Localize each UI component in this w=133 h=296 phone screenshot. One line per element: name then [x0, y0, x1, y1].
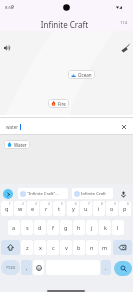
button[interactable]: f — [47, 220, 59, 235]
button[interactable]: Search — [114, 261, 132, 276]
staticText: u — [84, 205, 88, 212]
staticText: z — [26, 244, 29, 251]
button[interactable]: Clear board — [118, 41, 132, 55]
button[interactable]: , — [21, 260, 32, 275]
button[interactable]: e — [27, 201, 39, 216]
button[interactable]: n — [86, 240, 98, 255]
staticText: a — [12, 224, 16, 231]
button[interactable]: g — [60, 220, 72, 235]
button[interactable]: Emoji — [33, 260, 44, 275]
staticText: n — [90, 244, 94, 251]
staticText: Water — [14, 142, 27, 148]
button[interactable]: r — [40, 201, 52, 216]
staticText: 5 — [61, 202, 63, 206]
staticText: v — [65, 244, 68, 251]
staticText: l — [117, 224, 119, 231]
staticText: b — [77, 244, 81, 251]
button[interactable]: "Infinite Craft"... — [18, 188, 68, 199]
staticText: d — [38, 224, 42, 231]
staticText: Fire — [58, 101, 66, 107]
button[interactable]: j — [86, 220, 98, 235]
staticText: r — [45, 205, 48, 212]
staticText: x — [39, 244, 42, 251]
staticText: 0 — [127, 202, 129, 206]
staticText: e — [31, 205, 35, 212]
button[interactable]: Backspace — [113, 240, 132, 255]
button[interactable]: h — [73, 220, 85, 235]
button[interactable]: c — [47, 240, 59, 255]
button[interactable]: Google search — [3, 189, 13, 199]
button[interactable]: z — [21, 240, 33, 255]
staticText: "Infinite Craft"... — [27, 191, 59, 197]
button[interactable]: Toggle sound — [0, 41, 14, 55]
staticText: w — [18, 205, 23, 212]
button[interactable]: Water — [4, 140, 30, 149]
staticText: 114 — [120, 20, 128, 26]
button[interactable]: ?123 — [1, 260, 20, 275]
staticText: k — [104, 224, 107, 231]
button[interactable]: v — [60, 240, 72, 255]
staticText: 4 — [48, 202, 50, 206]
button[interactable]: Clear text — [118, 121, 130, 133]
staticText: 8:54 — [5, 4, 14, 10]
staticText: ?123 — [6, 265, 16, 271]
staticText: g — [64, 224, 68, 231]
button[interactable]: . — [101, 260, 111, 275]
button[interactable]: y — [67, 201, 79, 216]
staticText: p — [123, 205, 127, 212]
staticText: 6 — [75, 202, 77, 206]
staticText: 1 — [9, 202, 11, 206]
button[interactable]: Voice input — [117, 188, 129, 200]
button[interactable]: Fire — [48, 99, 69, 108]
button[interactable]: p — [119, 201, 131, 216]
button[interactable]: i — [93, 201, 105, 216]
staticText: 8 — [101, 202, 103, 206]
staticText: o — [110, 205, 114, 212]
button[interactable]: s — [21, 220, 33, 235]
button[interactable]: w — [14, 201, 26, 216]
button[interactable]: l — [112, 220, 124, 235]
button[interactable]: m — [99, 240, 111, 255]
staticText: t — [58, 205, 60, 212]
button[interactable]: b — [73, 240, 85, 255]
staticText: s — [26, 224, 29, 231]
button[interactable]: Shift — [1, 240, 20, 255]
staticText: m — [102, 244, 108, 251]
button[interactable]: x — [34, 240, 46, 255]
button[interactable]: o — [106, 201, 118, 216]
staticText: Ocean — [78, 72, 92, 78]
staticText: f — [52, 224, 54, 231]
staticText: . — [105, 264, 107, 271]
staticText: , — [26, 264, 28, 271]
staticText: 7 — [88, 202, 90, 206]
button[interactable]: k — [99, 220, 111, 235]
staticText: 3 — [35, 202, 37, 206]
staticText: Infinite Craft — [0, 19, 131, 30]
staticText: 9 — [114, 202, 116, 206]
button[interactable]: t — [53, 201, 65, 216]
button[interactable]: q — [1, 201, 13, 216]
button[interactable]: d — [34, 220, 46, 235]
staticText: q — [5, 205, 9, 212]
button[interactable]: a — [8, 220, 20, 235]
staticText: 2 — [22, 202, 24, 206]
staticText: i — [98, 205, 100, 212]
staticText: y — [72, 205, 75, 212]
staticText: Infinite Craft — [81, 191, 106, 197]
staticText: h — [77, 224, 81, 231]
button[interactable]: Ocean — [68, 70, 95, 79]
staticText: j — [91, 224, 93, 231]
staticText: water — [6, 124, 19, 130]
button[interactable]: Infinite Craft — [72, 188, 113, 199]
staticText: c — [52, 244, 55, 251]
button[interactable]: u — [80, 201, 92, 216]
